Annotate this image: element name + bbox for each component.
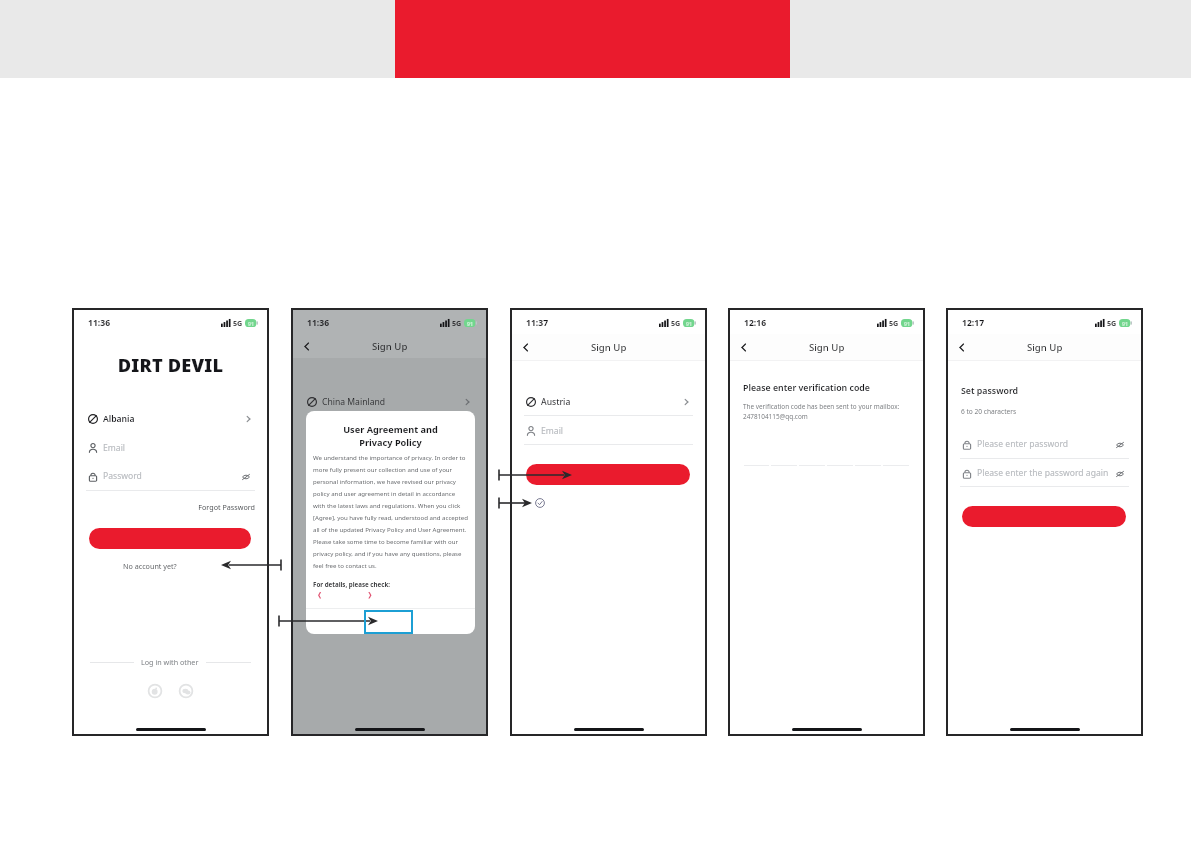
- staticText: User Agreement and Privacy Policy: [306, 423, 475, 449]
- staticText: China Mainland: [322, 396, 386, 408]
- staticText: 91: [467, 320, 473, 327]
- button[interactable]: Email: [86, 435, 255, 461]
- button[interactable]: Log in with Apple: [147, 683, 163, 699]
- button[interactable]: User Agreement: [366, 589, 406, 602]
- staticText: 5G: [889, 318, 899, 328]
- button[interactable]: Please enter password: [960, 431, 1129, 457]
- staticText: The verification code has been sent to y…: [743, 402, 900, 421]
- button[interactable]: Agree: [306, 609, 475, 633]
- button[interactable]: Continue: [962, 506, 1126, 527]
- staticText: 91: [1122, 320, 1128, 327]
- button[interactable]: Accept terms: [531, 494, 549, 512]
- button[interactable]: China Mainland: [305, 389, 474, 415]
- staticText: 5G: [1107, 318, 1117, 328]
- staticText: 91: [904, 320, 910, 327]
- button[interactable]: Privacy Policy: [312, 589, 352, 602]
- staticText: For details, please check:: [313, 580, 391, 588]
- staticText: Log in with other: [141, 657, 199, 667]
- button[interactable]: Show password: [1110, 464, 1128, 482]
- button[interactable]: 11:36: [72, 308, 269, 736]
- button[interactable]: Back: [953, 339, 969, 355]
- staticText: 》: [368, 591, 376, 600]
- button[interactable]: Log in with WeChat: [178, 683, 194, 699]
- button[interactable]: Forgot Password: [192, 498, 255, 512]
- staticText: 91: [686, 320, 692, 327]
- staticText: Austria: [541, 396, 571, 408]
- staticText: 5G: [233, 318, 243, 328]
- staticText: Forgot Password: [192, 502, 255, 512]
- staticText: Sign Up: [591, 341, 627, 354]
- staticText: Password: [103, 470, 142, 482]
- button[interactable]: Show password: [236, 467, 254, 485]
- staticText: 12:16: [744, 317, 767, 329]
- staticText: Please enter verification code: [743, 382, 871, 394]
- button[interactable]: No account yet?: [120, 557, 178, 571]
- button[interactable]: Austria: [524, 389, 693, 415]
- staticText: 5G: [452, 318, 462, 328]
- button[interactable]: Back: [298, 338, 314, 354]
- staticText: We understand the importance of privacy.…: [313, 453, 468, 569]
- staticText: 11:37: [526, 317, 549, 329]
- button[interactable]: Continue: [526, 464, 690, 485]
- staticText: 11:36: [307, 317, 330, 329]
- button[interactable]: Show password: [1110, 435, 1128, 453]
- staticText: 6 to 20 characters: [961, 407, 1017, 416]
- staticText: Please enter the password again: [977, 467, 1109, 479]
- button[interactable]: Password: [86, 463, 255, 489]
- staticText: Sign Up: [809, 341, 845, 354]
- button[interactable]: Back: [517, 339, 533, 355]
- staticText: 91: [248, 320, 254, 327]
- staticText: 12:17: [962, 317, 985, 329]
- button[interactable]: Albania: [86, 406, 255, 432]
- button[interactable]: Back: [735, 339, 751, 355]
- staticText: Email: [541, 425, 564, 437]
- staticText: No account yet?: [123, 561, 177, 571]
- button[interactable]: Email: [524, 418, 693, 444]
- staticText: 5G: [671, 318, 681, 328]
- staticText: Albania: [103, 413, 135, 425]
- staticText: 《: [314, 591, 322, 600]
- staticText: Sign Up: [1027, 341, 1063, 354]
- button[interactable]: Continue: [89, 528, 251, 549]
- staticText: Email: [103, 442, 126, 454]
- staticText: Please enter password: [977, 438, 1069, 450]
- button[interactable]: Please enter the password again: [960, 460, 1129, 486]
- staticText: Set password: [961, 385, 1019, 397]
- staticText: Sign Up: [372, 340, 408, 353]
- staticText: DIRT DEVIL: [72, 353, 269, 378]
- staticText: 11:36: [88, 317, 111, 329]
